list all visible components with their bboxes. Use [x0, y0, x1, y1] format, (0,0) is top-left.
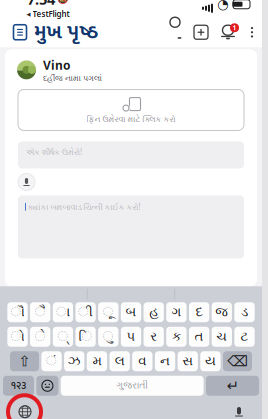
staticText: ુ: [103, 330, 114, 343]
button[interactable]: Next keyboard: [8, 398, 42, 419]
staticText: વ: [138, 355, 146, 368]
button[interactable]: Add: [188, 17, 214, 47]
staticText: ૈ: [35, 306, 46, 319]
button[interactable]: દ: [189, 302, 209, 322]
staticText: જ: [215, 306, 228, 319]
staticText: TestFlight: [32, 9, 69, 19]
staticText: ઝ: [68, 355, 81, 368]
staticText: િ: [79, 330, 93, 343]
staticText: દહીંજ નામા પગલાં: [43, 75, 102, 82]
staticText: દ: [196, 306, 203, 319]
button[interactable]: ય: [200, 351, 221, 371]
button[interactable]: Return: [206, 376, 259, 396]
button[interactable]: લ: [109, 351, 130, 371]
button[interactable]: Notifications: [214, 17, 242, 47]
button[interactable]: ે: [30, 327, 50, 347]
staticText: ૌ: [10, 306, 24, 319]
button[interactable]: પ: [121, 327, 141, 347]
staticText: ી: [78, 306, 93, 319]
staticText: ્: [57, 330, 68, 343]
button[interactable]: ત: [189, 327, 209, 347]
staticText: ૂ: [103, 306, 114, 319]
button[interactable]: જ: [212, 302, 232, 322]
staticText: ફિન ઉમેરવા માટે ક્લિક કરો: [86, 116, 175, 123]
staticText: ⇧: [18, 353, 30, 369]
button[interactable]: ઝ: [64, 351, 84, 371]
button[interactable]: Shift: [10, 351, 39, 371]
button[interactable]: ક: [166, 327, 186, 347]
staticText: Vino: [43, 57, 71, 73]
staticText: ા: [56, 306, 70, 319]
staticText: ચ: [216, 330, 227, 343]
button[interactable]: ચ: [212, 327, 232, 347]
staticText: ટ: [240, 330, 248, 343]
button[interactable]: Search: [162, 17, 188, 47]
button[interactable]: ડ: [234, 302, 255, 322]
staticText: ↵: [226, 377, 238, 394]
staticText: ય: [205, 355, 216, 368]
button[interactable]: Dictation: [224, 398, 254, 419]
staticText: 🔕: [57, 0, 69, 4]
button[interactable]: More options: [242, 17, 262, 47]
staticText: ક: [172, 330, 181, 343]
staticText: ો: [10, 330, 24, 343]
button[interactable]: ી: [75, 302, 96, 322]
button[interactable]: Emoji: [36, 376, 58, 396]
button[interactable]: Space: [61, 376, 204, 396]
staticText: ર: [150, 330, 157, 343]
staticText: સ: [182, 355, 193, 368]
button[interactable]: ં: [41, 351, 62, 371]
button[interactable]: Voice input: [18, 173, 35, 190]
staticText: 7:54: [27, 0, 55, 9]
staticText: એક શીર્ષક ઉમેરો!: [26, 146, 82, 157]
staticText: ં: [46, 355, 57, 368]
staticText: ડ: [241, 306, 248, 319]
button[interactable]: િ: [75, 327, 96, 347]
button[interactable]: મ: [87, 351, 107, 371]
button[interactable]: બ: [121, 302, 141, 322]
staticText: બ: [125, 306, 136, 319]
staticText: ત: [195, 330, 204, 343]
staticText: 1: [232, 23, 236, 32]
button[interactable]: ો: [7, 327, 28, 347]
staticText: ગુજરાતી: [116, 381, 148, 390]
button[interactable]: હ: [143, 302, 164, 322]
button[interactable]: ૈ: [30, 302, 50, 322]
button[interactable]: Delete: [223, 351, 252, 371]
button[interactable]: ગ: [166, 302, 186, 322]
button[interactable]: ૌ: [7, 302, 28, 322]
button[interactable]: ુ: [98, 327, 118, 347]
staticText: ે: [35, 330, 46, 343]
button[interactable]: સ: [178, 351, 198, 371]
button[interactable]: ન: [155, 351, 175, 371]
button[interactable]: ર: [143, 327, 164, 347]
button[interactable]: Numbers: [3, 376, 34, 396]
staticText: મુખ પૃષ્ઠ: [34, 16, 98, 48]
staticText: ૧૨૩: [11, 377, 26, 394]
staticText: ◔: [217, 0, 229, 12]
button[interactable]: ા: [53, 302, 73, 322]
button[interactable]: ૂ: [98, 302, 118, 322]
staticText: ◂: [26, 9, 30, 18]
button[interactable]: ્: [53, 327, 73, 347]
staticText: મ: [92, 355, 101, 368]
button[interactable]: ટ: [234, 327, 255, 347]
staticText: ક્યાંકા બમબાવાડ ચિત્ની કાઈક કરો!: [27, 201, 140, 212]
staticText: લ: [115, 355, 125, 368]
staticText: ⌫: [227, 353, 248, 369]
staticText: હ: [149, 306, 158, 319]
staticText: પ: [126, 330, 135, 343]
staticText: ન: [160, 355, 170, 368]
button[interactable]: વ: [132, 351, 152, 371]
staticText: ગ: [171, 306, 181, 319]
